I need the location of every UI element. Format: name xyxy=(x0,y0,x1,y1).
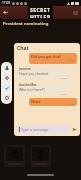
staticText: President nominating xyxy=(3,21,49,27)
button[interactable] xyxy=(4,145,25,167)
button[interactable]: AnotherMan xyxy=(17,82,69,96)
staticText: 17:07 xyxy=(60,92,67,95)
staticText: 17:08 xyxy=(68,104,75,105)
staticText: AnotherMan xyxy=(19,83,37,87)
staticText: 17:06 xyxy=(60,76,67,79)
staticText: Who is in here?? xyxy=(19,87,45,92)
button[interactable]: Menu xyxy=(71,8,80,17)
button[interactable]: Nope xyxy=(29,98,77,106)
staticText: 17:09 xyxy=(2,1,11,5)
button[interactable]: Cards xyxy=(3,94,11,102)
button[interactable]: jmmmm xyxy=(17,66,69,80)
button[interactable]: Did you get this? xyxy=(29,53,77,64)
staticText: jmmmm xyxy=(19,67,31,71)
staticText: SECRET xyxy=(30,7,51,14)
button[interactable]: Settings xyxy=(3,74,11,82)
staticText: HITLER xyxy=(30,14,51,18)
button[interactable]: Profile xyxy=(3,64,11,72)
staticText: Nope xyxy=(31,99,41,104)
staticText: Type a message... xyxy=(21,127,51,132)
button[interactable] xyxy=(30,145,51,167)
button[interactable]: Send xyxy=(70,125,78,133)
staticText: Chat xyxy=(17,45,29,52)
button[interactable]: Confirm xyxy=(3,84,11,92)
button[interactable]: Back xyxy=(1,8,10,17)
staticText: Hope you checked xyxy=(19,71,49,76)
staticText: 17:05 xyxy=(68,59,75,63)
button[interactable]: Type a message... xyxy=(17,125,68,133)
staticText: Did you get this? xyxy=(31,54,62,59)
